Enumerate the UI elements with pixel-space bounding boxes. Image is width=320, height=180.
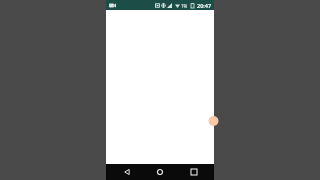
button[interactable]: Back [114, 164, 140, 180]
button[interactable]: Home [147, 164, 173, 180]
other: Screen recording [108, 1, 117, 10]
staticText: 20:47 [197, 2, 212, 9]
staticText: 1% [181, 3, 188, 9]
button[interactable]: Recent apps [181, 164, 207, 180]
